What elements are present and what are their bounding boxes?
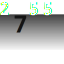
staticText: 2	[0, 0, 9, 20]
staticText: 5	[29, 0, 39, 20]
staticText: 7	[14, 8, 27, 39]
staticText: 5	[43, 0, 53, 20]
